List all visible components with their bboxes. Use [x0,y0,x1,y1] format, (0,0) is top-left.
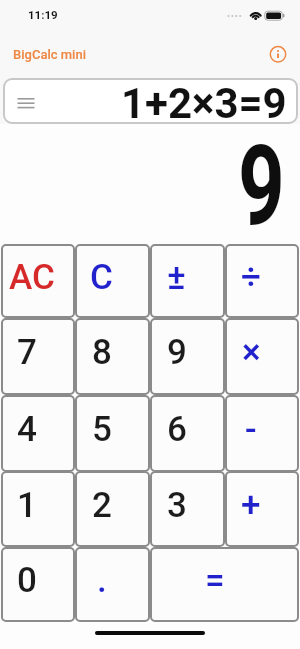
staticText: × [242,332,261,373]
staticText: + [241,485,261,526]
button[interactable]: 1 [1,471,75,547]
staticText: ± [167,257,186,298]
staticText: 8 [92,332,112,373]
staticText: 1+2×3=9 [121,79,287,125]
button[interactable]: 8 [75,318,150,395]
staticText: 2 [92,485,112,526]
button[interactable]: ÷ [225,244,299,318]
staticText: BigCalc mini [13,47,87,62]
button[interactable] [268,44,288,64]
staticText: 7 [17,332,37,373]
button[interactable]: = [150,547,299,622]
staticText: 1 [17,485,37,526]
button[interactable]: 6 [150,395,225,472]
staticText: = [205,560,225,601]
staticText: ÷ [241,257,261,298]
button[interactable]: × [225,318,299,395]
button[interactable]: 4 [1,395,75,472]
button[interactable]: - [225,395,299,472]
staticText: 9 [238,121,285,251]
button[interactable]: 5 [75,395,150,472]
staticText: 0 [17,560,37,601]
button[interactable]: 7 [1,318,75,395]
button[interactable]: + [225,471,299,547]
button[interactable]: 0 [1,547,75,622]
button[interactable]: ± [150,244,225,318]
staticText: AC [9,257,55,298]
button[interactable]: C [75,244,150,318]
button[interactable]: . [75,547,150,622]
button[interactable]: AC [1,244,75,318]
staticText: 4 [17,409,37,450]
staticText: . [97,560,107,601]
staticText: - [245,409,257,450]
staticText: C [90,257,113,298]
button[interactable]: 2 [75,471,150,547]
staticText: 3 [167,485,187,526]
button[interactable]: 9 [150,318,225,395]
button[interactable]: 3 [150,471,225,547]
staticText: 11:19 [28,8,58,21]
button[interactable] [8,84,43,119]
staticText: 6 [167,409,187,450]
staticText: 5 [92,409,112,450]
staticText: 9 [167,332,187,373]
